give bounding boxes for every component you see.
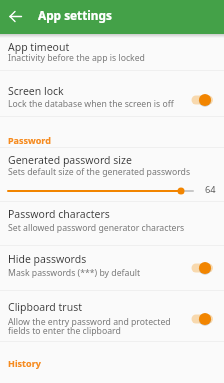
staticText: History <box>8 357 41 369</box>
button[interactable]: Clipboard trust <box>0 291 224 341</box>
staticText: Password characters <box>8 207 110 221</box>
button[interactable]: Hide passwords <box>0 246 224 290</box>
button[interactable]: App timeout <box>0 37 224 71</box>
staticText: Inactivity before the app is locked <box>8 52 145 64</box>
staticText: Clipboard trust <box>8 300 82 314</box>
staticText: Sets default size of the generated passw… <box>8 166 191 178</box>
staticText: Password <box>8 134 51 146</box>
staticText: App settings <box>38 7 112 23</box>
staticText: Lock the database when the screen is off <box>8 98 174 110</box>
button[interactable]: Password characters <box>0 202 224 245</box>
staticText: 64 <box>205 183 216 196</box>
staticText: Mask passwords (***) by default <box>8 267 141 279</box>
staticText: Allow the entry password and protected <box>8 316 171 328</box>
staticText: fields to enter the clipboard <box>8 325 121 337</box>
staticText: Set allowed password generator character… <box>8 222 185 234</box>
button[interactable]: Generated password size <box>0 147 224 201</box>
staticText: Generated password size <box>8 153 132 167</box>
staticText: Hide passwords <box>8 252 87 266</box>
staticText: Screen lock <box>8 84 64 98</box>
staticText: App timeout <box>8 40 70 54</box>
button[interactable]: Screen lock <box>0 71 224 116</box>
button[interactable] <box>0 0 34 34</box>
